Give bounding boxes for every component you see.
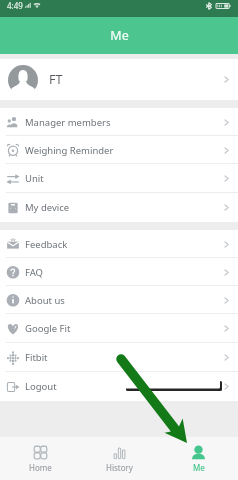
button[interactable]: FT	[0, 59, 238, 100]
staticText: My device	[25, 201, 70, 214]
staticText: FT	[49, 71, 63, 88]
button[interactable]: Feedback	[0, 230, 238, 258]
staticText: Unit	[25, 172, 44, 185]
button[interactable]: Me	[159, 437, 238, 480]
staticText: Me	[193, 462, 205, 473]
staticText: Manager members	[25, 116, 111, 129]
button[interactable]: Home	[0, 437, 80, 480]
staticText: Feedback	[25, 238, 68, 251]
staticText: About us	[25, 294, 65, 307]
button[interactable]: FAQ	[0, 258, 238, 286]
staticText: FAQ	[25, 266, 44, 279]
button[interactable]: Fitbit	[0, 343, 238, 372]
staticText: Me	[110, 27, 129, 44]
staticText: 4:49	[7, 0, 23, 11]
button[interactable]: My device	[0, 193, 238, 222]
button[interactable]: Google Fit	[0, 314, 238, 343]
button[interactable]: History	[80, 437, 159, 480]
staticText: History	[106, 462, 133, 473]
button[interactable]: Manager members	[0, 108, 238, 136]
button[interactable]: Unit	[0, 164, 238, 193]
button[interactable]: Weighing Reminder	[0, 136, 238, 164]
staticText: Weighing Reminder	[25, 144, 114, 157]
button[interactable]: Logout	[0, 372, 238, 401]
staticText: Logout	[25, 380, 57, 393]
staticText: Fitbit	[25, 351, 48, 364]
staticText: Google Fit	[25, 322, 71, 335]
staticText: Home	[29, 462, 52, 473]
button[interactable]: About us	[0, 286, 238, 314]
